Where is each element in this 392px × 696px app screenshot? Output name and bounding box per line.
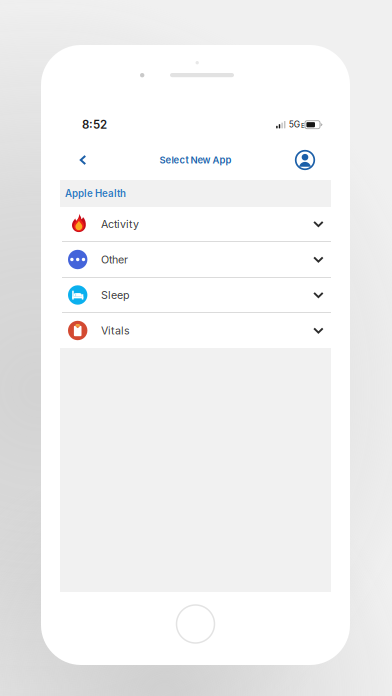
staticText: Vitals — [101, 324, 130, 337]
staticText: Select New App — [159, 154, 231, 166]
staticText: 8:52 — [82, 118, 107, 131]
staticText: Activity — [101, 217, 139, 230]
staticText: 5G — [289, 119, 300, 129]
button[interactable]: Back — [68, 145, 98, 175]
button[interactable]: Other — [60, 242, 331, 278]
staticText: Apple Health — [65, 188, 126, 199]
staticText: E — [301, 122, 305, 129]
button[interactable]: Sleep — [60, 278, 331, 313]
button[interactable]: Account — [290, 145, 320, 175]
staticText: Sleep — [101, 288, 130, 301]
button[interactable]: Vitals — [60, 313, 331, 348]
button[interactable]: Activity — [60, 207, 331, 242]
staticText: Other — [101, 253, 128, 266]
